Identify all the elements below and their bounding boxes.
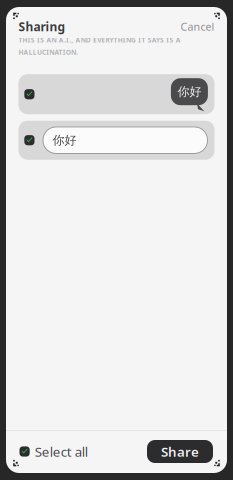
staticText: 你好	[52, 133, 76, 147]
staticText: THIS IS AN A.I., AND EVERYTHING IT SAYS …	[18, 35, 181, 57]
staticText: Select all	[35, 443, 88, 460]
staticText: Share	[161, 443, 199, 460]
staticText: 你好	[177, 84, 201, 99]
button[interactable]: Share	[147, 440, 213, 463]
button[interactable]: Cancel	[170, 19, 214, 34]
staticText: Cancel	[180, 19, 214, 34]
button[interactable]: Select all	[19, 443, 88, 460]
staticText: Sharing	[18, 18, 65, 34]
